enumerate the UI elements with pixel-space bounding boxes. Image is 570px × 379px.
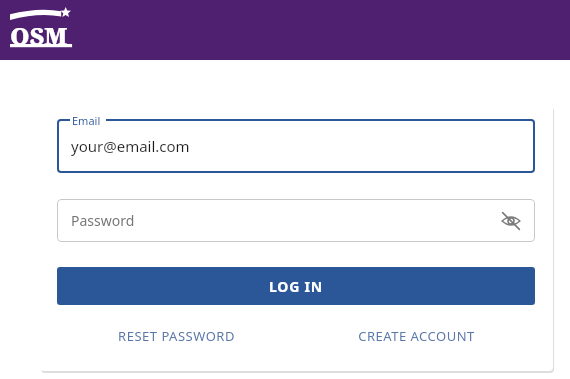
staticText: LOG IN	[269, 277, 324, 296]
button[interactable]: CREATE ACCOUNT	[296, 321, 536, 351]
button[interactable]: LOG IN	[57, 267, 535, 305]
button[interactable]: Password	[57, 199, 535, 242]
button[interactable]: Email	[57, 119, 535, 173]
staticText: CREATE ACCOUNT	[358, 327, 475, 345]
staticText: RESET PASSWORD	[118, 327, 235, 345]
staticText: your@email.com	[71, 136, 190, 156]
button[interactable]: RESET PASSWORD	[57, 321, 296, 351]
staticText: Email	[72, 113, 101, 128]
button[interactable]: Show password	[495, 205, 527, 237]
staticText: OSM	[10, 19, 68, 52]
staticText: Password	[71, 211, 135, 230]
